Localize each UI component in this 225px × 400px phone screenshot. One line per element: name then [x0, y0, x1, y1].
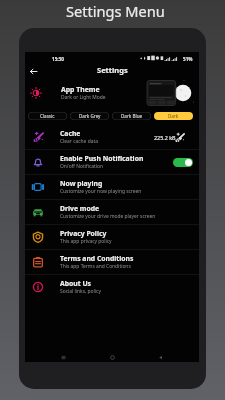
staticText: Dark — [168, 113, 179, 119]
staticText: 51% — [183, 56, 193, 62]
button[interactable]: Back — [157, 354, 164, 361]
staticText: Classic — [40, 113, 55, 119]
staticText: Dark Blue — [121, 113, 143, 119]
button[interactable]: Toggle push notification — [173, 158, 193, 167]
button[interactable]: About Us — [25, 275, 199, 299]
staticText: Settings Menu — [66, 1, 165, 21]
staticText: Enable Push Notification — [60, 154, 144, 163]
staticText: Privacy Policy — [60, 229, 107, 238]
staticText: Terms and Conditions — [60, 254, 134, 263]
button[interactable]: Enable Push Notification — [25, 150, 199, 174]
button[interactable]: Recents — [60, 354, 67, 361]
button[interactable]: Now playing — [25, 175, 199, 199]
staticText: Cache — [60, 129, 81, 138]
staticText: Drive mode — [60, 204, 99, 213]
staticText: About Us — [60, 279, 91, 288]
staticText: 225.2 kB — [154, 134, 176, 141]
staticText: Settings — [97, 65, 128, 75]
staticText: Clear cache data — [60, 138, 98, 145]
staticText: Now playing — [60, 179, 103, 188]
staticText: Social links, policy — [60, 288, 101, 295]
button[interactable]: Terms and Conditions — [25, 250, 199, 274]
staticText: App Theme — [61, 85, 100, 94]
button[interactable]: Dark Blue — [112, 112, 151, 120]
staticText: Customize your drive mode player screen — [60, 213, 156, 220]
button[interactable]: Dark — [154, 112, 193, 120]
button[interactable]: Clear cache — [174, 132, 185, 143]
staticText: 15:30 — [52, 56, 64, 62]
staticText: On/off Notification — [60, 163, 104, 170]
button[interactable]: Back — [28, 66, 39, 77]
button[interactable]: Cache — [25, 125, 199, 149]
button[interactable]: Drive mode — [25, 200, 199, 224]
button[interactable]: Dark Grey — [70, 112, 109, 120]
staticText: This app Terms and Conditions — [60, 263, 131, 270]
staticText: Dark or Light Mode — [61, 94, 106, 101]
staticText: This app privacy policy — [60, 238, 112, 245]
staticText: Customize your now playing screen — [60, 188, 142, 195]
button[interactable]: Classic — [28, 112, 67, 120]
button[interactable]: Privacy Policy — [25, 225, 199, 249]
button[interactable]: Home — [109, 354, 116, 361]
staticText: Dark Grey — [79, 113, 101, 119]
